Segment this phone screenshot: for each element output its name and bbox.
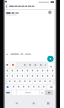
button[interactable] xyxy=(15,68,20,73)
button[interactable] xyxy=(47,79,52,84)
button[interactable] xyxy=(44,90,50,95)
button[interactable] xyxy=(45,74,50,79)
button[interactable] xyxy=(7,79,12,84)
button[interactable] xyxy=(35,68,40,73)
button[interactable] xyxy=(5,68,10,73)
button[interactable] xyxy=(17,85,22,90)
button[interactable] xyxy=(25,68,30,73)
button[interactable] xyxy=(39,90,43,95)
button[interactable] xyxy=(37,85,42,90)
button[interactable] xyxy=(22,85,27,90)
button[interactable] xyxy=(50,74,55,79)
button[interactable] xyxy=(20,74,25,79)
button[interactable] xyxy=(12,79,17,84)
button[interactable] xyxy=(27,85,32,90)
button[interactable] xyxy=(30,74,35,79)
button[interactable] xyxy=(17,79,22,84)
button[interactable] xyxy=(47,10,52,15)
button[interactable] xyxy=(42,100,54,108)
button[interactable] xyxy=(48,85,55,90)
button[interactable] xyxy=(40,68,45,73)
button[interactable] xyxy=(5,74,10,79)
button[interactable] xyxy=(22,79,27,84)
button[interactable] xyxy=(4,61,10,68)
button[interactable] xyxy=(25,74,30,79)
button[interactable] xyxy=(47,61,55,69)
button[interactable] xyxy=(42,85,47,90)
button[interactable] xyxy=(37,79,42,84)
button[interactable] xyxy=(5,90,12,95)
button[interactable] xyxy=(45,68,50,73)
button[interactable] xyxy=(32,85,37,90)
button[interactable] xyxy=(10,74,15,79)
button[interactable] xyxy=(46,54,55,63)
button[interactable] xyxy=(32,79,37,84)
button[interactable] xyxy=(30,68,35,73)
button[interactable] xyxy=(17,90,38,95)
button[interactable] xyxy=(40,74,45,79)
button[interactable] xyxy=(5,51,45,60)
button[interactable] xyxy=(15,74,20,79)
button[interactable] xyxy=(28,100,40,108)
button[interactable] xyxy=(50,68,55,73)
button[interactable] xyxy=(27,79,32,84)
button[interactable] xyxy=(4,3,9,9)
button[interactable] xyxy=(5,85,11,90)
button[interactable] xyxy=(10,68,15,73)
button[interactable] xyxy=(42,79,47,84)
button[interactable] xyxy=(12,85,17,90)
button[interactable] xyxy=(10,61,16,68)
button[interactable] xyxy=(20,68,25,73)
button[interactable] xyxy=(11,100,23,108)
button[interactable] xyxy=(35,74,40,79)
